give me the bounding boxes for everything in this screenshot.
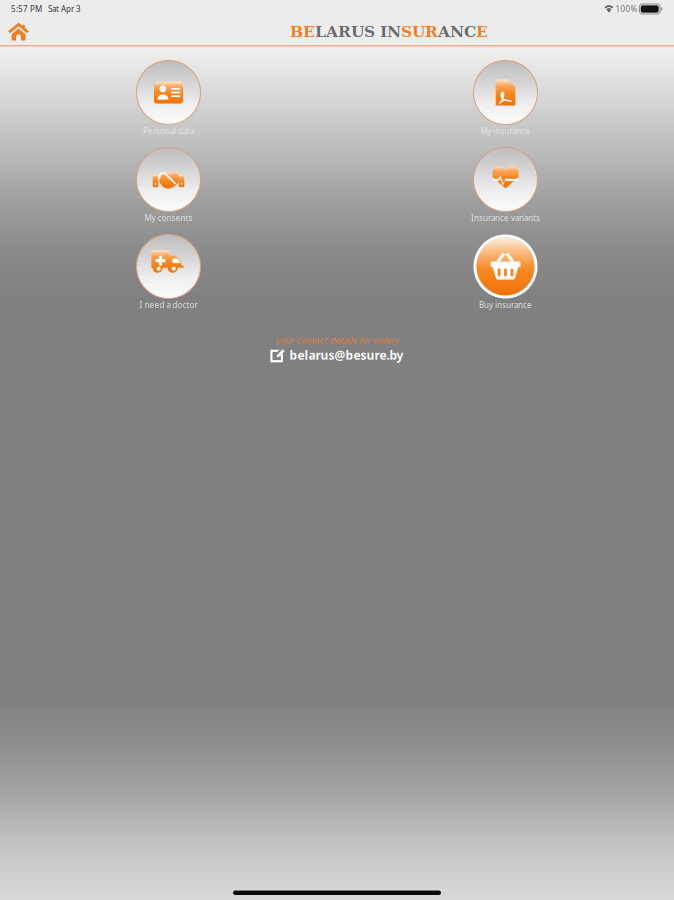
button[interactable]: Home bbox=[0, 18, 39, 45]
button[interactable]: Personal data bbox=[88, 59, 248, 136]
staticText: your contact details for orders bbox=[275, 336, 398, 346]
button[interactable]: belarus@besure.by bbox=[270, 346, 404, 363]
staticText: My consents bbox=[144, 213, 192, 223]
staticText: Personal data bbox=[143, 126, 194, 136]
button[interactable]: My insurance bbox=[425, 59, 585, 136]
staticText: My insurance bbox=[480, 126, 530, 136]
staticText: ANC bbox=[438, 22, 476, 41]
staticText: Buy insurance bbox=[479, 300, 532, 310]
button[interactable]: Insurance variants bbox=[425, 146, 585, 223]
staticText: 5:57 PM Sat Apr 3 bbox=[11, 4, 81, 14]
staticText: SUR bbox=[401, 22, 438, 41]
staticText: 100% bbox=[613, 4, 639, 14]
staticText: belarus@besure.by bbox=[290, 347, 404, 363]
staticText: I need a doctor bbox=[139, 300, 197, 310]
button[interactable]: Buy insurance bbox=[425, 233, 585, 310]
staticText: E bbox=[476, 22, 488, 41]
staticText: Insurance variants bbox=[471, 213, 540, 223]
button[interactable]: My consents bbox=[88, 146, 248, 223]
staticText: LARUS IN bbox=[315, 22, 401, 41]
button[interactable]: I need a doctor bbox=[88, 233, 248, 310]
staticText: BE bbox=[290, 22, 315, 41]
